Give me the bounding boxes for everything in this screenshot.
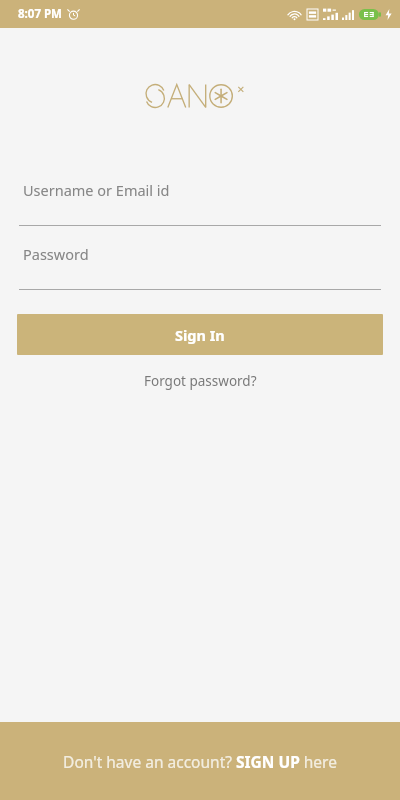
button[interactable]: Forgot password? (0, 368, 400, 394)
button[interactable]: Password (0, 244, 400, 264)
staticText: Password (23, 244, 89, 264)
other: SANO logo (146, 82, 254, 110)
staticText: 8:07 PM (18, 6, 62, 22)
button[interactable]: Don't have an account? SIGN UP here (0, 722, 400, 800)
button[interactable]: Sign In (17, 314, 383, 355)
staticText: Forgot password? (144, 372, 257, 390)
button[interactable]: Username or Email id (0, 180, 400, 200)
staticText: Sign In (175, 325, 225, 345)
staticText: Username or Email id (23, 180, 170, 200)
staticText: Don't have an account? SIGN UP here (63, 751, 337, 772)
